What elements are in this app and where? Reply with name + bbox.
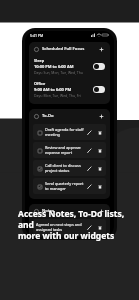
button[interactable]: Checkbox bbox=[36, 147, 43, 154]
button[interactable]: Toggle Office schedule bbox=[93, 86, 105, 93]
staticText: 5:41 PM bbox=[30, 33, 44, 38]
button[interactable]: Checkbox bbox=[33, 124, 106, 140]
button[interactable]: Delete bbox=[96, 147, 103, 154]
button[interactable]: Edit bbox=[86, 129, 93, 136]
staticText: Days: Sun, Mon, Tue, Wed, Thu bbox=[34, 70, 83, 75]
staticText: 10:00 PM to 6:00 AM bbox=[34, 64, 74, 69]
button[interactable]: Checkbox bbox=[36, 183, 43, 190]
button[interactable]: Delete bbox=[96, 129, 103, 136]
button[interactable]: Office bbox=[34, 81, 105, 98]
button[interactable]: Add to-do item bbox=[97, 112, 105, 120]
staticText: Access Notes, To-Do lists, and bbox=[18, 208, 129, 230]
button[interactable]: Scheduled Full Focus bbox=[29, 42, 110, 104]
button[interactable]: To-Do bbox=[29, 109, 110, 199]
button[interactable]: Checkbox bbox=[33, 160, 106, 176]
button[interactable]: Checkbox bbox=[36, 129, 43, 136]
staticText: Office bbox=[34, 81, 46, 86]
staticText: expense report bbox=[45, 150, 73, 155]
button[interactable]: Edit bbox=[86, 183, 93, 190]
staticText: meeting bbox=[45, 132, 60, 137]
button[interactable]: Delete bbox=[96, 224, 103, 231]
button[interactable]: Agreed on next steps and bbox=[33, 219, 106, 235]
staticText: project status bbox=[45, 168, 70, 173]
button[interactable]: Edit bbox=[86, 224, 93, 231]
button[interactable]: Checkbox bbox=[33, 178, 106, 194]
staticText: Call client to discuss bbox=[45, 163, 81, 168]
button[interactable]: Sleep bbox=[34, 58, 105, 75]
staticText: 9:00 AM to 6:00 PM bbox=[34, 87, 72, 92]
button[interactable]: Notes bbox=[29, 204, 110, 237]
staticText: Sleep bbox=[34, 58, 45, 63]
staticText: to manager bbox=[45, 186, 66, 191]
staticText: Send quarterly report bbox=[45, 181, 84, 186]
button[interactable]: Checkbox bbox=[36, 165, 43, 172]
button[interactable]: Delete bbox=[96, 183, 103, 190]
staticText: Review and approve bbox=[45, 145, 81, 150]
button[interactable]: Toggle Sleep schedule bbox=[93, 63, 105, 70]
staticText: Agreed on next steps and bbox=[36, 222, 82, 227]
staticText: assigned tasks bbox=[36, 227, 63, 232]
staticText: Draft agenda for staff bbox=[45, 127, 84, 132]
staticText: Days: Mon, Tue, Wed, Thu, Fri bbox=[34, 93, 81, 98]
button[interactable]: Delete bbox=[96, 165, 103, 172]
button[interactable]: Add focus schedule bbox=[97, 45, 105, 53]
button[interactable]: Add note bbox=[97, 207, 105, 215]
button[interactable]: Edit bbox=[86, 147, 93, 154]
button[interactable]: Edit bbox=[86, 165, 93, 172]
staticText: Notes bbox=[42, 208, 55, 214]
staticText: To-Do bbox=[42, 113, 54, 119]
staticText: Scheduled Full Focus bbox=[42, 46, 85, 52]
button[interactable]: Checkbox bbox=[33, 142, 106, 158]
staticText: more with our widgets bbox=[18, 230, 115, 242]
